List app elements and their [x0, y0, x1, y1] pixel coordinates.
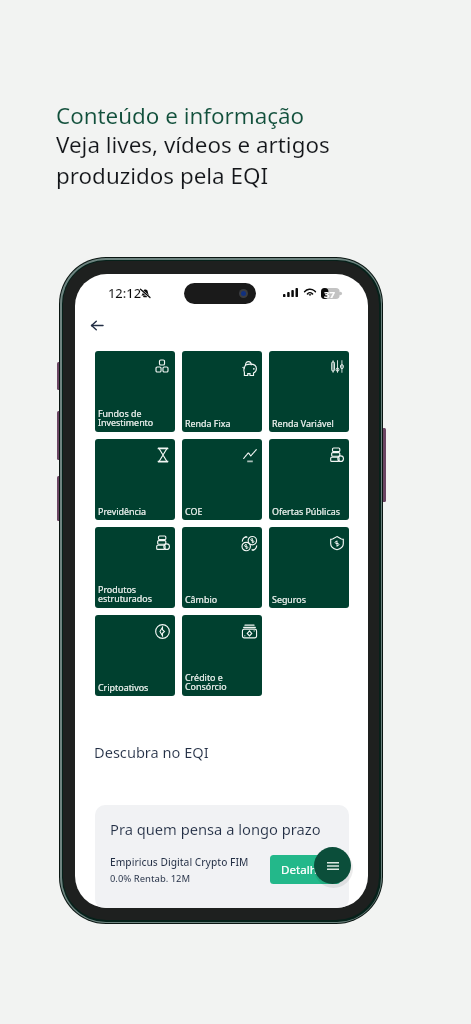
- staticText: Conteúdo e informação: [56, 100, 305, 131]
- staticText: Empiricus Digital Crypto FIM: [110, 855, 249, 869]
- button[interactable]: COE: [182, 439, 262, 520]
- button[interactable]: Descubra no EQI: [94, 742, 209, 762]
- button[interactable]: Menu: [314, 847, 351, 884]
- button[interactable]: Produtos estruturados: [95, 527, 175, 608]
- staticText: Ofertas Públicas: [272, 505, 340, 517]
- staticText: Crédito e Consórcio: [185, 671, 227, 693]
- staticText: Câmbio: [185, 593, 218, 605]
- staticText: 0.0% Rentab. 12M: [110, 872, 191, 885]
- button[interactable]: Fundos de Investimento: [95, 351, 175, 432]
- button[interactable]: Detalhes: [270, 855, 340, 884]
- staticText: Seguros: [272, 593, 306, 605]
- staticText: Pra quem pensa a longo prazo: [110, 819, 321, 839]
- staticText: 12:12: [108, 284, 141, 302]
- staticText: Renda Fixa: [185, 417, 231, 429]
- staticText: Previdência: [98, 505, 147, 517]
- button[interactable]: Renda Fixa: [182, 351, 262, 432]
- staticText: Veja lives, vídeos e artigos produzidos …: [56, 129, 330, 191]
- button[interactable]: Ofertas Públicas: [269, 439, 349, 520]
- staticText: Produtos estruturados: [98, 583, 152, 605]
- staticText: Detalhes: [281, 862, 329, 878]
- button[interactable]: Voltar: [83, 313, 111, 337]
- button[interactable]: Câmbio: [182, 527, 262, 608]
- staticText: Criptoativos: [98, 681, 149, 693]
- staticText: COE: [185, 505, 203, 517]
- button[interactable]: Previdência: [95, 439, 175, 520]
- button[interactable]: Crédito e Consórcio: [182, 615, 262, 696]
- staticText: 37: [324, 288, 335, 299]
- button[interactable]: Renda Variável: [269, 351, 349, 432]
- button[interactable]: Pra quem pensa a longo prazo: [95, 805, 349, 908]
- button[interactable]: Seguros: [269, 527, 349, 608]
- staticText: Renda Variável: [272, 417, 334, 429]
- button[interactable]: Criptoativos: [95, 615, 175, 696]
- staticText: Fundos de Investimento: [98, 407, 154, 429]
